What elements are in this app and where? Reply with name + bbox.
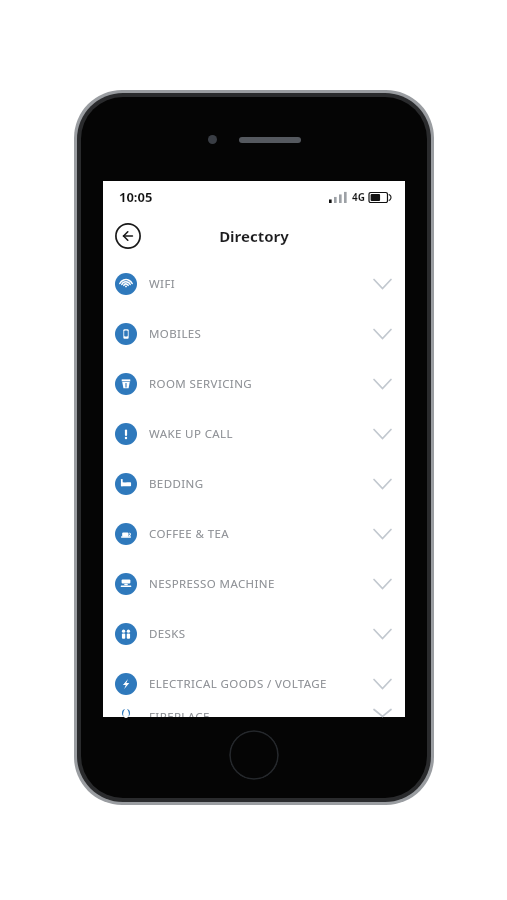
staticText: Directory xyxy=(219,226,289,246)
staticText: 4G xyxy=(352,190,365,204)
button[interactable]: Back xyxy=(113,221,143,251)
staticText: WAKE UP CALL xyxy=(149,426,233,442)
button[interactable]: WAKE UP CALL xyxy=(103,409,405,459)
button[interactable]: MOBILES xyxy=(103,309,405,359)
button[interactable]: WIFI xyxy=(103,259,405,309)
button[interactable]: NESPRESSO MACHINE xyxy=(103,559,405,609)
staticText: 10:05 xyxy=(119,188,153,206)
staticText: ELECTRICAL GOODS / VOLTAGE xyxy=(149,676,327,692)
button[interactable]: ROOM SERVICING xyxy=(103,359,405,409)
button[interactable]: DESKS xyxy=(103,609,405,659)
button[interactable]: ELECTRICAL GOODS / VOLTAGE xyxy=(103,659,405,709)
button[interactable]: FIREPLACE xyxy=(103,709,405,717)
staticText: DESKS xyxy=(149,626,186,642)
staticText: FIREPLACE xyxy=(149,709,210,717)
button[interactable]: Home xyxy=(229,730,279,780)
staticText: COFFEE & TEA xyxy=(149,526,230,542)
button[interactable]: BEDDING xyxy=(103,459,405,509)
staticText: MOBILES xyxy=(149,326,202,342)
button[interactable]: COFFEE & TEA xyxy=(103,509,405,559)
staticText: ROOM SERVICING xyxy=(149,376,253,392)
staticText: WIFI xyxy=(149,276,176,292)
staticText: NESPRESSO MACHINE xyxy=(149,576,275,592)
staticText: BEDDING xyxy=(149,476,204,492)
